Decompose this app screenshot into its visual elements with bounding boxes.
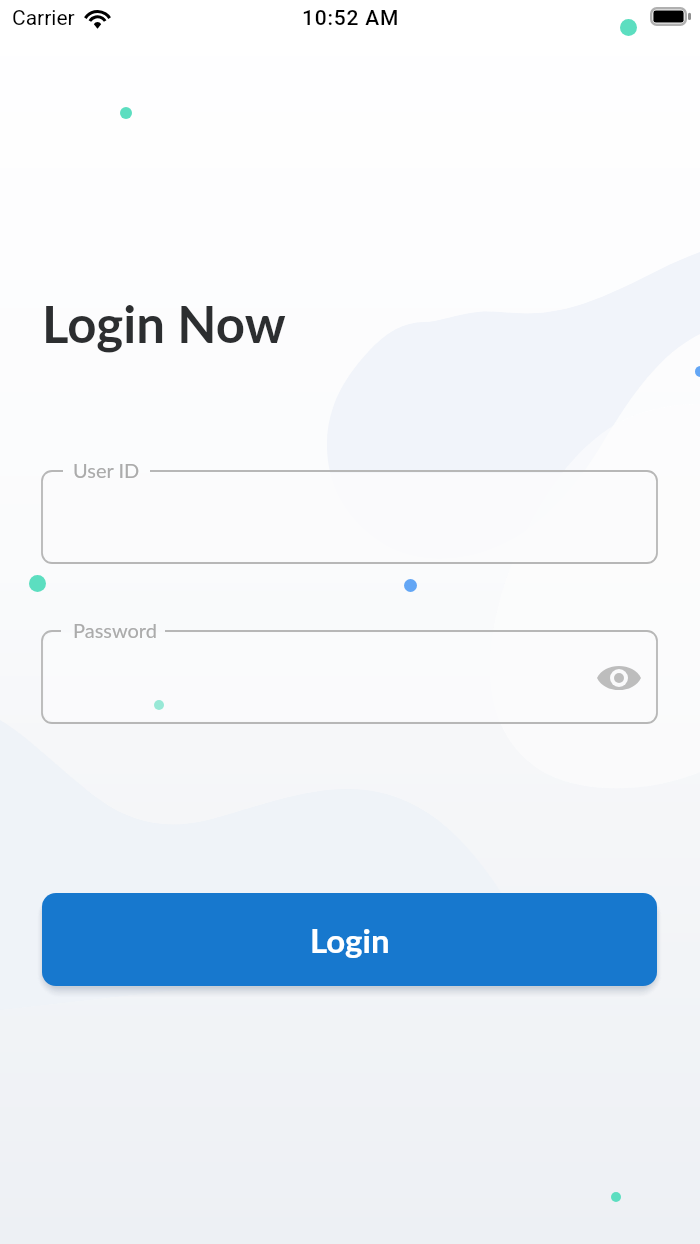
button[interactable]: Password — [42, 631, 657, 723]
button[interactable]: Login — [42, 893, 657, 986]
button[interactable]: Show password — [592, 651, 646, 705]
staticText: Password — [73, 618, 157, 642]
staticText: 10:52 AM — [302, 6, 400, 31]
staticText: Login Now — [42, 293, 286, 354]
staticText: User ID — [73, 458, 140, 482]
staticText: Login — [310, 920, 390, 960]
staticText: Carrier — [12, 6, 75, 31]
button[interactable]: User ID — [42, 471, 657, 563]
